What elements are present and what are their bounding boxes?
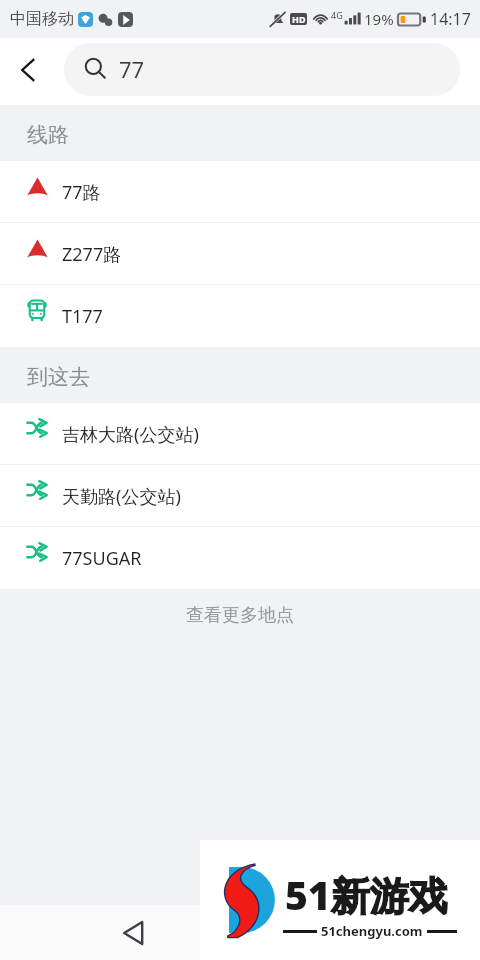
button[interactable]: 查看更多地点 [0, 589, 480, 641]
button[interactable]: Z277路 [0, 223, 480, 285]
staticText: 吉林大路(公交站) [62, 422, 199, 447]
staticText: 4G [331, 9, 343, 21]
button[interactable]: Back [6, 49, 52, 95]
staticText: 线路 [27, 122, 69, 148]
staticText: 51chengyu.com [321, 922, 423, 940]
button[interactable]: Back [110, 910, 156, 956]
button[interactable]: T177 [0, 285, 480, 347]
staticText: 中国移动 [10, 9, 74, 29]
staticText: 77 [119, 54, 145, 84]
staticText: 51新游戏 [285, 868, 448, 921]
staticText: T177 [62, 304, 103, 329]
staticText: 77路 [62, 180, 101, 205]
button[interactable]: 77SUGAR [0, 527, 480, 589]
staticText: 天勤路(公交站) [62, 484, 181, 509]
staticText: 查看更多地点 [186, 604, 294, 627]
button[interactable]: 77路 [0, 161, 480, 223]
button[interactable]: 天勤路(公交站) [0, 465, 480, 527]
staticText: HD [292, 13, 306, 25]
staticText: 77SUGAR [62, 546, 142, 571]
staticText: 到这去 [27, 364, 90, 390]
staticText: 19% [364, 9, 394, 29]
button[interactable]: 77 [64, 43, 460, 96]
staticText: Z277路 [62, 242, 122, 267]
button[interactable]: Recents [324, 910, 370, 956]
button[interactable]: Home [217, 910, 263, 956]
button[interactable]: 吉林大路(公交站) [0, 403, 480, 465]
staticText: 14:17 [430, 8, 471, 30]
